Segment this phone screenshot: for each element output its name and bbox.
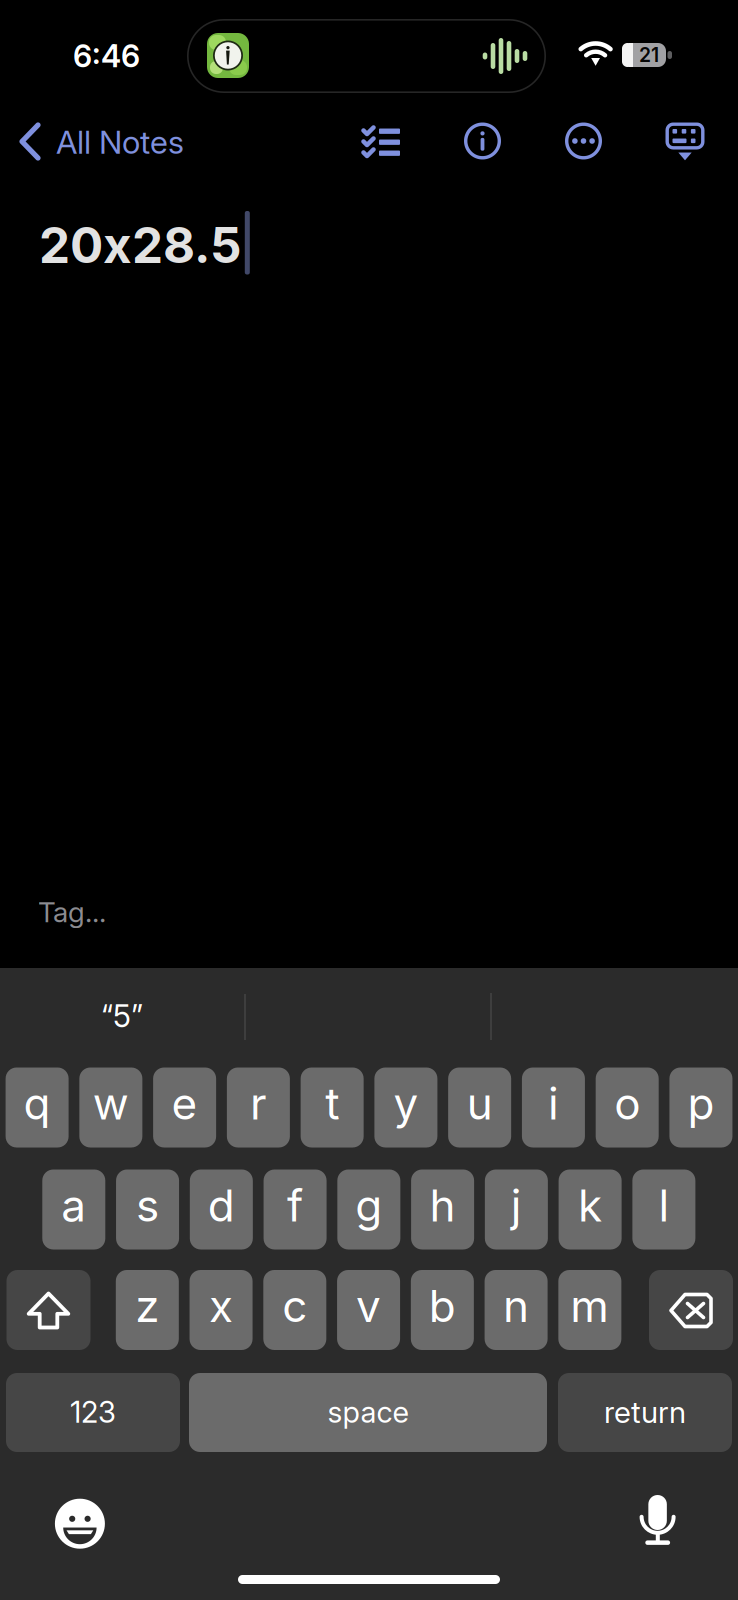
button[interactable]: Delete [649,1270,733,1350]
staticText: c [282,1279,307,1333]
button[interactable]: h [411,1169,474,1249]
staticText: s [136,1179,159,1232]
button[interactable]: k [559,1169,622,1249]
button[interactable]: r [227,1067,290,1147]
staticText: z [135,1279,159,1333]
staticText: 28.5 [132,215,242,275]
staticText: return [604,1394,686,1430]
button[interactable]: j [485,1169,548,1249]
staticText: m [570,1279,609,1333]
button[interactable]: a [42,1169,105,1249]
staticText: h [430,1179,456,1232]
button[interactable]: z [116,1270,179,1350]
button[interactable]: w [79,1067,142,1147]
staticText: b [429,1279,456,1333]
staticText: r [250,1077,267,1130]
staticText: 20 [39,215,103,275]
staticText: p [687,1077,714,1130]
staticText: 6:46 [73,37,140,74]
button[interactable]: s [116,1169,179,1249]
staticText: v [356,1279,381,1333]
button[interactable]: c [263,1270,326,1350]
button[interactable]: m [558,1270,621,1350]
button[interactable]: x [190,1270,253,1350]
staticText: k [578,1179,602,1232]
staticText: “5” [101,997,143,1034]
button[interactable]: More [564,122,602,160]
button[interactable]: 123 [6,1373,180,1452]
staticText: l [658,1179,669,1232]
staticText: o [614,1077,640,1130]
staticText: 21 [639,43,659,67]
button[interactable]: Dictation [640,1495,676,1548]
staticText: q [24,1077,51,1130]
staticText: n [503,1279,529,1333]
staticText: e [172,1077,198,1130]
button[interactable]: l [632,1169,695,1249]
staticText: t [325,1077,339,1130]
button[interactable]: q [6,1067,69,1147]
staticText: x [209,1279,233,1333]
staticText: g [355,1179,382,1232]
staticText: 123 [70,1394,116,1430]
button[interactable]: space [189,1373,547,1452]
staticText: w [93,1077,129,1130]
button[interactable]: Checklist [362,126,400,157]
button[interactable]: o [596,1067,659,1147]
button[interactable]: y [374,1067,437,1147]
button[interactable]: Shift [6,1270,90,1350]
button[interactable]: Hide Keyboard [665,122,704,168]
button[interactable]: f [264,1169,327,1249]
staticText: a [61,1179,86,1232]
staticText: Tag... [38,895,106,929]
staticText: i [548,1077,559,1130]
button[interactable]: e [153,1067,216,1147]
button[interactable]: i [522,1067,585,1147]
button[interactable]: v [337,1270,400,1350]
button[interactable]: g [337,1169,400,1249]
button[interactable]: p [669,1067,732,1147]
button[interactable]: Emoji [55,1499,105,1549]
button[interactable]: Info [463,122,501,160]
staticText: All Notes [56,123,184,161]
button[interactable]: u [448,1067,511,1147]
button[interactable]: t [301,1067,364,1147]
button[interactable]: d [190,1169,253,1249]
button[interactable]: n [485,1270,548,1350]
staticText: x [103,215,132,275]
staticText: space [327,1394,408,1430]
button[interactable]: “5” [42,988,202,1044]
staticText: d [208,1179,235,1232]
button[interactable]: return [558,1373,732,1452]
staticText: j [511,1179,522,1232]
staticText: f [287,1179,303,1232]
staticText: u [467,1077,493,1130]
button[interactable]: All Notes [17,116,195,168]
button[interactable]: b [411,1270,474,1350]
staticText: y [393,1077,418,1130]
